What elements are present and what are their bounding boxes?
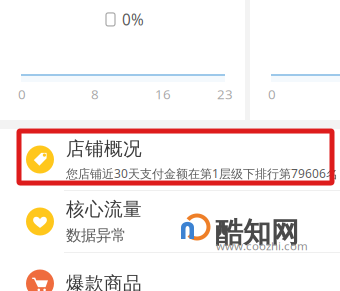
button[interactable]: 核心流量 [0,191,340,252]
staticText: 核心流量 [66,198,142,221]
staticText: 23 [217,85,233,103]
staticText: 8 [91,85,99,103]
button[interactable]: 爆款商品 [0,253,340,291]
staticText: 16 [155,85,171,103]
staticText: 0 [268,85,276,103]
staticText: 0 [18,85,26,103]
staticText: 店铺概况 [66,137,142,160]
staticText: 数据异常 [66,226,126,245]
staticText: 0% [122,9,144,30]
staticText: 您店铺近30天支付金额在第1层级下排行第79606名 [66,165,338,182]
staticText: www.coozhi.com [216,238,308,254]
button[interactable]: 店铺概况 [0,129,340,190]
staticText: 酷知网 [215,215,299,250]
staticText: 爆款商品 [66,272,142,291]
